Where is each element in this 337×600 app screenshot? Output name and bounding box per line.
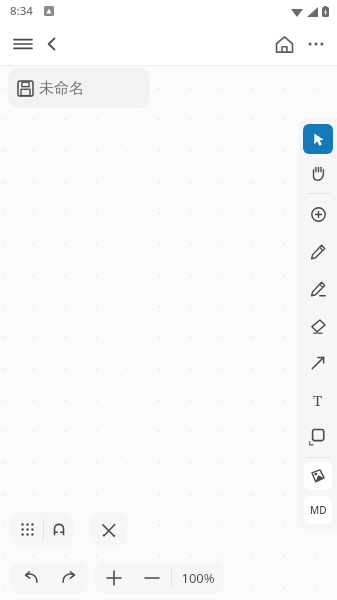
button[interactable]: 100% bbox=[172, 561, 224, 594]
button[interactable]: Select tool bbox=[303, 124, 333, 154]
button[interactable]: Text bbox=[299, 381, 337, 418]
button[interactable]: Grid bbox=[11, 512, 43, 547]
staticText: T bbox=[313, 390, 323, 410]
button[interactable]: Highlighter bbox=[299, 270, 337, 307]
button[interactable]: More options bbox=[301, 29, 331, 59]
button[interactable]: Pan tool bbox=[299, 154, 337, 191]
button[interactable]: Pen bbox=[299, 233, 337, 270]
button[interactable]: Shape bbox=[299, 418, 337, 455]
button[interactable]: Insert image bbox=[304, 462, 332, 490]
button[interactable]: Menu bbox=[8, 29, 38, 59]
button[interactable]: Arrow bbox=[299, 344, 337, 381]
staticText: 100% bbox=[181, 569, 215, 587]
button[interactable]: Snap to grid bbox=[44, 512, 73, 547]
button[interactable]: Zoom in bbox=[95, 561, 133, 594]
button[interactable]: Zoom out bbox=[133, 561, 171, 594]
button[interactable]: Back bbox=[39, 31, 65, 57]
button[interactable]: Home bbox=[269, 29, 299, 59]
button[interactable]: Redo bbox=[50, 561, 86, 594]
button[interactable]: Undo bbox=[13, 561, 49, 594]
staticText: 8:34 bbox=[10, 3, 33, 19]
button[interactable]: MD bbox=[304, 496, 332, 524]
button[interactable]: Eraser bbox=[299, 307, 337, 344]
staticText: MD bbox=[310, 503, 327, 517]
button[interactable]: Lasso select bbox=[91, 512, 127, 547]
staticText: 未命名 bbox=[39, 79, 84, 98]
button[interactable]: Add bbox=[299, 196, 337, 233]
button[interactable]: 未命名 bbox=[8, 68, 150, 108]
